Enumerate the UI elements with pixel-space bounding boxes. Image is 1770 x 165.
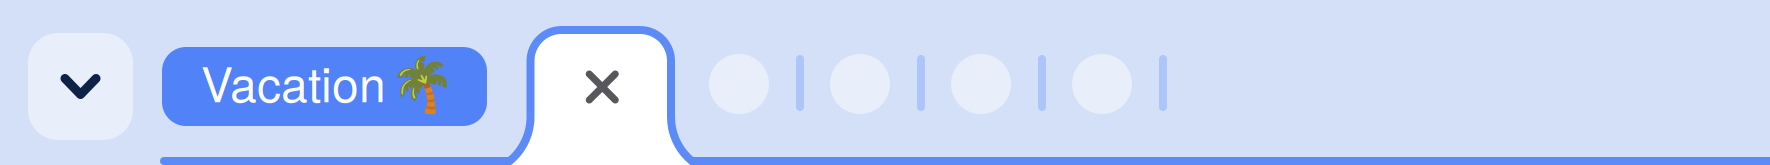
staticText: Vacation bbox=[201, 47, 386, 116]
staticText: 🌴 bbox=[389, 54, 455, 115]
button[interactable]: Show tab groups bbox=[28, 33, 133, 140]
button[interactable]: Tab 4 bbox=[951, 54, 1011, 114]
button[interactable]: Tab 3 bbox=[830, 54, 890, 114]
button[interactable]: Tab 5 bbox=[1072, 54, 1132, 114]
button[interactable]: Tab 2 bbox=[709, 54, 769, 114]
button[interactable]: Close tab bbox=[532, 31, 672, 143]
button[interactable]: Vacation bbox=[162, 47, 487, 126]
